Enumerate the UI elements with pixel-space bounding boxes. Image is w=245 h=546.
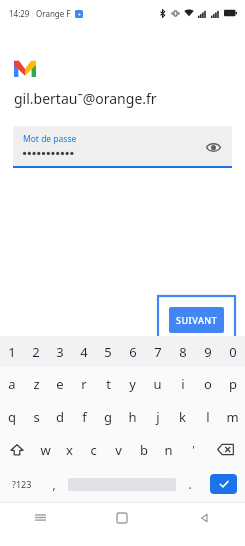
button[interactable]: Menu bbox=[0, 503, 81, 532]
staticText: r bbox=[81, 375, 87, 393]
staticText: 2 bbox=[32, 343, 40, 361]
button[interactable]: 8 bbox=[170, 336, 195, 367]
staticText: g bbox=[104, 408, 112, 426]
staticText: 8 bbox=[179, 343, 187, 361]
staticText: , bbox=[52, 476, 56, 492]
button[interactable]: Supprimer bbox=[206, 433, 245, 466]
button[interactable]: , bbox=[43, 466, 65, 502]
staticText: e bbox=[56, 375, 64, 393]
button[interactable]: 6 bbox=[120, 336, 145, 367]
button[interactable]: 0 bbox=[220, 336, 245, 367]
staticText: a bbox=[8, 375, 16, 393]
staticText: u bbox=[153, 375, 162, 393]
button[interactable]: g bbox=[96, 400, 120, 433]
button[interactable]: u bbox=[145, 367, 170, 400]
staticText: v bbox=[115, 441, 122, 459]
button[interactable]: o bbox=[195, 367, 220, 400]
staticText: q bbox=[8, 408, 16, 426]
button[interactable]: SUIVANT bbox=[158, 296, 235, 343]
button[interactable]: 5 bbox=[96, 336, 120, 367]
button[interactable]: z bbox=[24, 367, 48, 400]
button[interactable]: 3 bbox=[48, 336, 72, 367]
staticText: z bbox=[33, 375, 40, 393]
staticText: b bbox=[140, 441, 148, 459]
button[interactable]: 7 bbox=[145, 336, 170, 367]
staticText: i bbox=[181, 375, 185, 393]
button[interactable]: m bbox=[220, 400, 245, 433]
button[interactable]: 1 bbox=[0, 336, 24, 367]
button[interactable]: l bbox=[195, 400, 220, 433]
staticText: 9 bbox=[204, 343, 212, 361]
staticText: 7 bbox=[154, 343, 162, 361]
staticText: 1 bbox=[8, 343, 16, 361]
button[interactable] bbox=[65, 466, 179, 502]
staticText: . bbox=[188, 476, 192, 492]
staticText: x bbox=[66, 441, 73, 459]
staticText: Mot de passe bbox=[23, 133, 77, 145]
staticText: 0 bbox=[229, 343, 237, 361]
button[interactable]: k bbox=[170, 400, 195, 433]
button[interactable]: h bbox=[120, 400, 145, 433]
staticText: 6 bbox=[129, 343, 137, 361]
staticText: w bbox=[40, 441, 51, 459]
staticText: t bbox=[106, 375, 111, 393]
button[interactable]: w bbox=[33, 433, 57, 466]
staticText: s bbox=[33, 408, 40, 426]
button[interactable]: . bbox=[179, 466, 201, 502]
staticText: 3 bbox=[56, 343, 64, 361]
staticText: o bbox=[204, 375, 212, 393]
button[interactable]: r bbox=[72, 367, 96, 400]
staticText: l bbox=[206, 408, 210, 426]
staticText: SUIVANT bbox=[176, 314, 218, 326]
staticText: y bbox=[129, 375, 136, 393]
button[interactable]: 2 bbox=[24, 336, 48, 367]
button[interactable]: b bbox=[131, 433, 156, 466]
staticText: d bbox=[56, 408, 64, 426]
button[interactable]: p bbox=[220, 367, 245, 400]
button[interactable]: x bbox=[57, 433, 81, 466]
button[interactable]: 9 bbox=[195, 336, 220, 367]
staticText: m bbox=[226, 408, 239, 426]
button[interactable]: ' bbox=[181, 433, 206, 466]
button[interactable]: d bbox=[48, 400, 72, 433]
button[interactable]: y bbox=[120, 367, 145, 400]
staticText: Orange F bbox=[36, 8, 71, 19]
button[interactable]: q bbox=[0, 400, 24, 433]
staticText: f bbox=[82, 408, 87, 426]
button[interactable]: i bbox=[170, 367, 195, 400]
staticText: k bbox=[179, 408, 186, 426]
button[interactable]: Retour bbox=[163, 503, 245, 532]
staticText: h bbox=[128, 408, 137, 426]
button[interactable]: e bbox=[48, 367, 72, 400]
staticText: c bbox=[90, 441, 97, 459]
staticText: 4 bbox=[80, 343, 88, 361]
staticText: p bbox=[229, 375, 237, 393]
button[interactable]: f bbox=[72, 400, 96, 433]
staticText: j bbox=[156, 408, 160, 426]
button[interactable]: a bbox=[0, 367, 24, 400]
button[interactable]: Mot de passe bbox=[13, 126, 232, 168]
staticText: 5 bbox=[104, 343, 112, 361]
staticText: 14:29 bbox=[9, 8, 30, 19]
staticText: ' bbox=[192, 442, 195, 457]
button[interactable]: ?123 bbox=[0, 466, 43, 502]
button[interactable]: s bbox=[24, 400, 48, 433]
button[interactable]: t bbox=[96, 367, 120, 400]
button[interactable]: j bbox=[145, 400, 170, 433]
button[interactable]: Valider bbox=[201, 466, 245, 502]
button[interactable]: c bbox=[81, 433, 106, 466]
button[interactable]: Accueil bbox=[81, 503, 163, 532]
button[interactable]: Afficher le mot de passe bbox=[202, 136, 224, 158]
staticText: gil.bertauˉ@orange.fr bbox=[14, 89, 157, 108]
button[interactable]: Maj bbox=[0, 433, 33, 466]
staticText: ?123 bbox=[12, 478, 32, 490]
button[interactable]: v bbox=[106, 433, 131, 466]
button[interactable]: 4 bbox=[72, 336, 96, 367]
staticText: n bbox=[164, 441, 173, 459]
button[interactable]: n bbox=[156, 433, 181, 466]
